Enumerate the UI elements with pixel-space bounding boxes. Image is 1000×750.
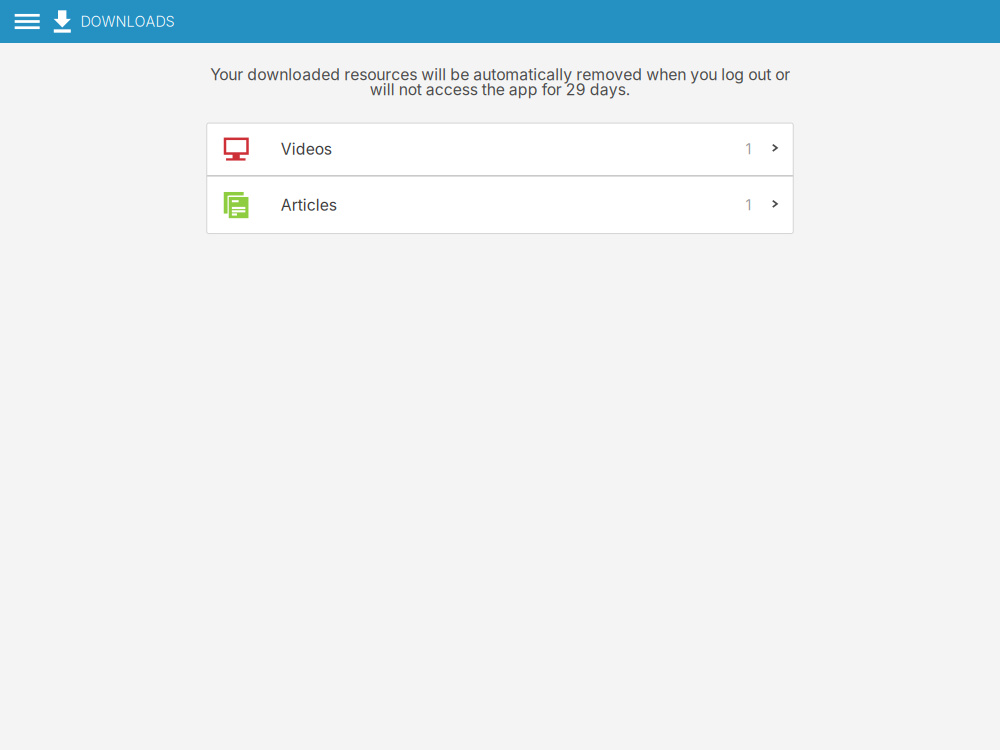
button[interactable]: Videos — [207, 123, 793, 175]
staticText: Videos — [281, 140, 332, 159]
button[interactable]: Menu — [0, 0, 54, 43]
staticText: DOWNLOADS — [80, 13, 174, 30]
button[interactable]: DOWNLOADS — [54, 0, 174, 43]
staticText: Your downloaded resources will be automa… — [210, 65, 790, 99]
staticText: 1 — [745, 140, 751, 158]
staticText: 1 — [745, 196, 751, 214]
button[interactable]: Articles — [207, 177, 793, 234]
staticText: Articles — [281, 196, 337, 215]
